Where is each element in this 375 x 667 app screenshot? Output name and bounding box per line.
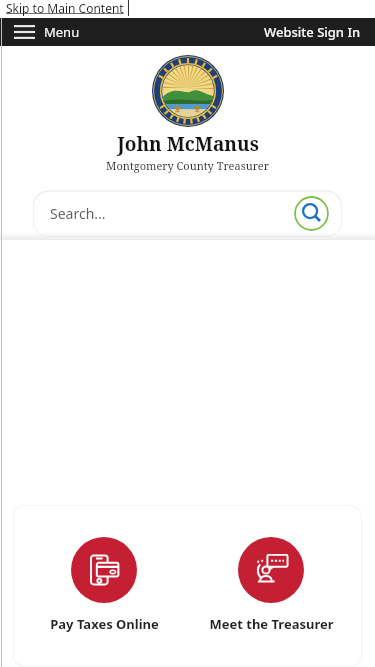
staticText: Search... <box>50 204 106 223</box>
staticText: Website Sign In <box>264 23 361 41</box>
button[interactable]: Search <box>294 196 329 231</box>
button[interactable]: Skip to Main Content <box>0 0 128 16</box>
staticText: Skip to Main Content <box>6 0 124 16</box>
staticText: Pay Taxes Online <box>50 615 159 633</box>
button[interactable]: Pay Taxes Online <box>29 535 179 635</box>
staticText: Menu <box>44 23 80 41</box>
button[interactable]: Menu <box>0 19 90 45</box>
staticText: Montgomery County Treasurer <box>106 158 269 173</box>
staticText: Meet the Treasurer <box>209 615 334 633</box>
button[interactable]: Montgomery County Treasurer seal <box>152 55 224 127</box>
staticText: John McManus <box>117 131 259 157</box>
button[interactable]: Search... <box>33 189 342 237</box>
button[interactable]: Meet the Treasurer <box>196 535 346 635</box>
button[interactable]: Website Sign In <box>250 19 375 45</box>
